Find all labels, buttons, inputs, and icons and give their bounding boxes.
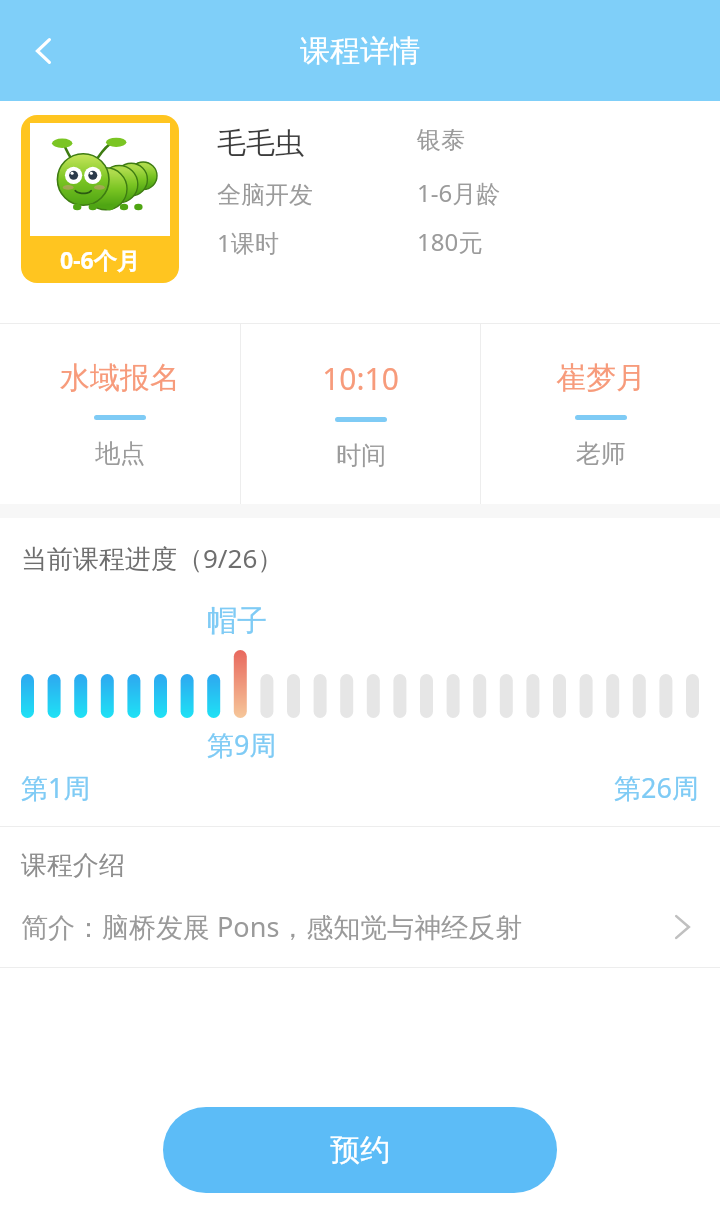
staticText: 地点 [95,438,145,469]
staticText: 10:10 [322,358,399,399]
staticText: 课程详情 [300,32,420,70]
staticText: 老师 [576,438,626,469]
staticText: 崔梦月 [556,359,646,397]
staticText: 简介：脑桥发展 Pons，感知觉与神经反射 [21,908,665,945]
staticText: 180元 [417,225,483,258]
staticText: 帽子 [207,602,267,640]
button[interactable]: 崔梦月 [481,324,720,504]
staticText: 1课时 [217,226,279,259]
button[interactable]: Back [12,19,76,83]
staticText: 1-6月龄 [417,176,501,209]
staticText: 银泰 [417,125,465,155]
staticText: 时间 [336,440,386,471]
button[interactable]: 预约 [163,1107,557,1193]
staticText: 当前课程进度（9/26） [21,540,284,576]
button[interactable]: 0-6个月 [21,115,179,283]
staticText: 第26周 [614,769,699,806]
button[interactable]: 水域报名 [0,324,240,504]
button[interactable]: 10:10 [241,324,480,504]
staticText: 水域报名 [60,359,180,397]
staticText: 第1周 [21,769,91,806]
staticText: 毛毛虫 [217,125,304,162]
staticText: 第9周 [207,726,277,763]
staticText: 全脑开发 [217,180,313,210]
button[interactable]: 简介：脑桥发展 Pons，感知觉与神经反射 [21,908,699,945]
staticText: 课程介绍 [21,849,125,882]
staticText: 预约 [330,1131,390,1169]
staticText: 0-6个月 [60,244,140,275]
